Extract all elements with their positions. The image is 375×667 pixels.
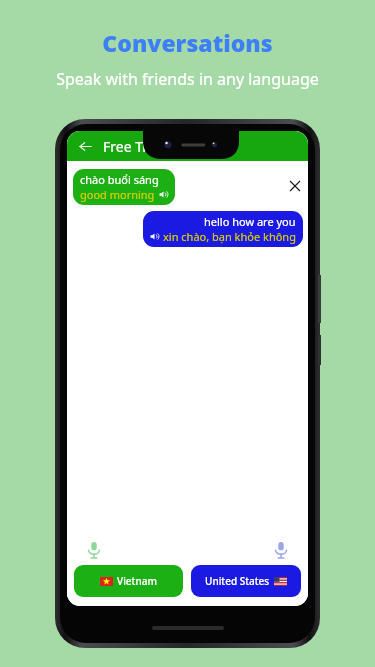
staticText: hello how are you [204, 214, 296, 229]
button[interactable]: Back [67, 131, 308, 161]
button[interactable]: Close [285, 176, 305, 196]
button[interactable]: Vietnam [74, 565, 183, 597]
button[interactable]: chào buổi sáng [73, 169, 175, 205]
button[interactable]: Speak Vietnamese [83, 539, 105, 561]
staticText: Vietnam [117, 574, 157, 588]
button[interactable]: hello how are you [143, 211, 303, 247]
staticText: United States [205, 574, 270, 588]
button[interactable]: United States [191, 565, 301, 597]
staticText: Speak with friends in any language [56, 68, 319, 90]
staticText: good morning [80, 187, 155, 202]
button[interactable]: Speak English [270, 539, 292, 561]
staticText: chào buổi sáng [80, 172, 159, 187]
button[interactable]: Back [76, 137, 94, 155]
staticText: Conversations [102, 27, 273, 58]
staticText: Free Translate [103, 137, 196, 156]
staticText: xin chào, bạn khỏe không [163, 229, 296, 244]
